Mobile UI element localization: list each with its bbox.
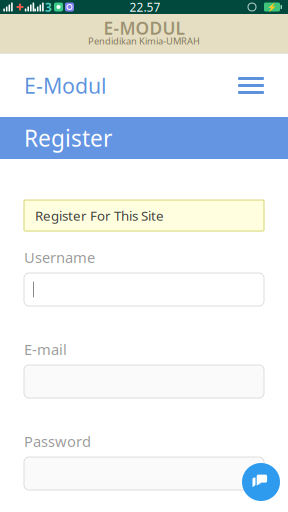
staticText: Register <box>24 123 112 153</box>
button[interactable]: Chat <box>242 463 280 501</box>
button[interactable]: Password <box>24 457 264 490</box>
staticText: Password <box>24 431 91 451</box>
button[interactable]: E-mail <box>24 365 264 398</box>
staticText: 3 <box>45 0 52 15</box>
button[interactable]: Username <box>24 273 264 306</box>
staticText: Register For This Site <box>35 207 164 224</box>
staticText: 22.57 <box>129 0 160 15</box>
staticText: Pendidikan Kimia-UMRAH <box>88 35 200 47</box>
staticText: Username <box>24 247 95 267</box>
button[interactable]: Menu <box>214 54 288 117</box>
staticText: ⚡ <box>267 2 277 11</box>
staticText: E-mail <box>24 339 67 359</box>
staticText: E-MODUL <box>103 16 184 39</box>
button[interactable]: E-Modul <box>0 54 131 117</box>
staticText: E-Modul <box>24 71 107 100</box>
